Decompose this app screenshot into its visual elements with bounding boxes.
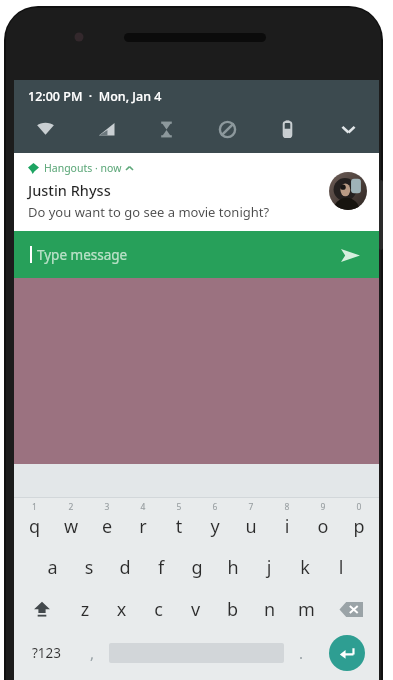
button[interactable]: 6 (197, 498, 233, 546)
staticText: Justin Rhyss (28, 180, 111, 200)
button[interactable]: 4 (125, 498, 161, 546)
button[interactable]: 2 (53, 498, 89, 546)
staticText: ?123 (18, 644, 75, 662)
staticText: u (233, 514, 269, 539)
staticText: 6 (197, 501, 233, 513)
staticText: . (284, 643, 318, 663)
button[interactable]: 7 (233, 498, 269, 546)
staticText: l (323, 555, 359, 580)
staticText: 8 (269, 501, 305, 513)
button[interactable]: l (323, 546, 359, 588)
button[interactable]: m (288, 588, 325, 630)
button[interactable]: f (143, 546, 179, 588)
staticText: j (251, 555, 287, 580)
staticText: e (89, 514, 125, 539)
staticText: , (75, 643, 109, 663)
button[interactable]: c (140, 588, 177, 630)
button[interactable]: Mobile signal (91, 114, 121, 144)
staticText: Do you want to go see a movie tonight? (28, 203, 270, 221)
button[interactable]: h (215, 546, 251, 588)
staticText: k (287, 555, 323, 580)
staticText: 4 (125, 501, 161, 513)
button[interactable]: ?123 (18, 630, 75, 676)
staticText: w (53, 514, 89, 539)
staticText: a (34, 555, 71, 580)
staticText: Type message (37, 246, 128, 264)
staticText: d (107, 555, 143, 580)
staticText: i (269, 514, 305, 539)
button[interactable]: 1 (16, 498, 53, 546)
button[interactable]: 3 (89, 498, 125, 546)
button[interactable]: 8 (269, 498, 305, 546)
button[interactable]: n (251, 588, 288, 630)
button[interactable]: . (284, 630, 318, 676)
staticText: z (67, 597, 103, 622)
staticText: 7 (233, 501, 269, 513)
button[interactable]: 9 (305, 498, 341, 546)
button[interactable]: a (34, 546, 71, 588)
staticText: 12:00 PM · Mon, Jan 4 (28, 88, 162, 105)
staticText: c (140, 597, 177, 622)
staticText: r (125, 514, 161, 539)
button[interactable]: Expand quick settings (333, 114, 363, 144)
button[interactable]: Hangouts · now (14, 153, 379, 231)
staticText: y (197, 514, 233, 539)
button[interactable]: k (287, 546, 323, 588)
staticText: b (214, 597, 251, 622)
staticText: p (341, 514, 377, 539)
staticText: 3 (89, 501, 125, 513)
staticText: h (215, 555, 251, 580)
staticText: o (305, 514, 341, 539)
button[interactable]: Battery (272, 114, 302, 144)
button[interactable]: Type message (14, 231, 379, 278)
button[interactable]: Backspace (325, 588, 377, 630)
button[interactable]: Wi-Fi (30, 114, 60, 144)
button[interactable]: j (251, 546, 287, 588)
button[interactable]: Auto rotate (151, 114, 181, 144)
button[interactable]: 5 (161, 498, 197, 546)
button[interactable]: Do not disturb (212, 114, 242, 144)
staticText: m (288, 597, 325, 622)
button[interactable]: 0 (341, 498, 377, 546)
staticText: g (179, 555, 215, 580)
staticText: n (251, 597, 288, 622)
button[interactable]: , (75, 630, 109, 676)
staticText: Hangouts · now (44, 161, 122, 175)
staticText: q (16, 514, 53, 539)
button[interactable]: b (214, 588, 251, 630)
button[interactable]: Shift (16, 588, 67, 630)
staticText: v (177, 597, 214, 622)
button[interactable]: d (107, 546, 143, 588)
staticText: 2 (53, 501, 89, 513)
button[interactable]: Enter (329, 635, 365, 671)
button[interactable]: z (67, 588, 103, 630)
staticText: f (143, 555, 179, 580)
staticText: t (161, 514, 197, 539)
staticText: x (103, 597, 140, 622)
button[interactable]: Contact photo (329, 172, 367, 210)
button[interactable]: s (71, 546, 107, 588)
staticText: 5 (161, 501, 197, 513)
staticText: 9 (305, 501, 341, 513)
staticText: 1 (16, 501, 53, 513)
staticText: 0 (341, 501, 377, 513)
button[interactable]: x (103, 588, 140, 630)
button[interactable]: v (177, 588, 214, 630)
button[interactable]: Send (337, 242, 363, 268)
button[interactable]: g (179, 546, 215, 588)
staticText: s (71, 555, 107, 580)
